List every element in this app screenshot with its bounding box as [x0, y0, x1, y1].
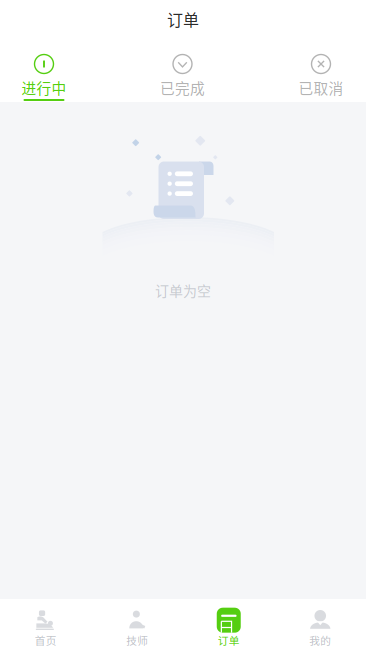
button[interactable]: 首页: [0, 599, 91, 650]
button[interactable]: 进行中: [14, 44, 74, 102]
button[interactable]: 已取消: [291, 44, 351, 102]
staticText: 首页: [35, 632, 57, 648]
staticText: 已完成: [160, 77, 205, 98]
staticText: 已取消: [298, 77, 343, 98]
button[interactable]: 已完成: [152, 44, 212, 102]
staticText: 订单为空: [155, 280, 211, 300]
staticText: 技师: [126, 632, 148, 648]
staticText: 我的: [309, 632, 331, 648]
staticText: 订单: [167, 7, 199, 31]
staticText: 订单: [218, 632, 240, 648]
button[interactable]: 我的: [274, 599, 366, 650]
button[interactable]: 技师: [91, 599, 183, 650]
button[interactable]: 订单: [183, 599, 274, 650]
staticText: 进行中: [21, 77, 66, 98]
